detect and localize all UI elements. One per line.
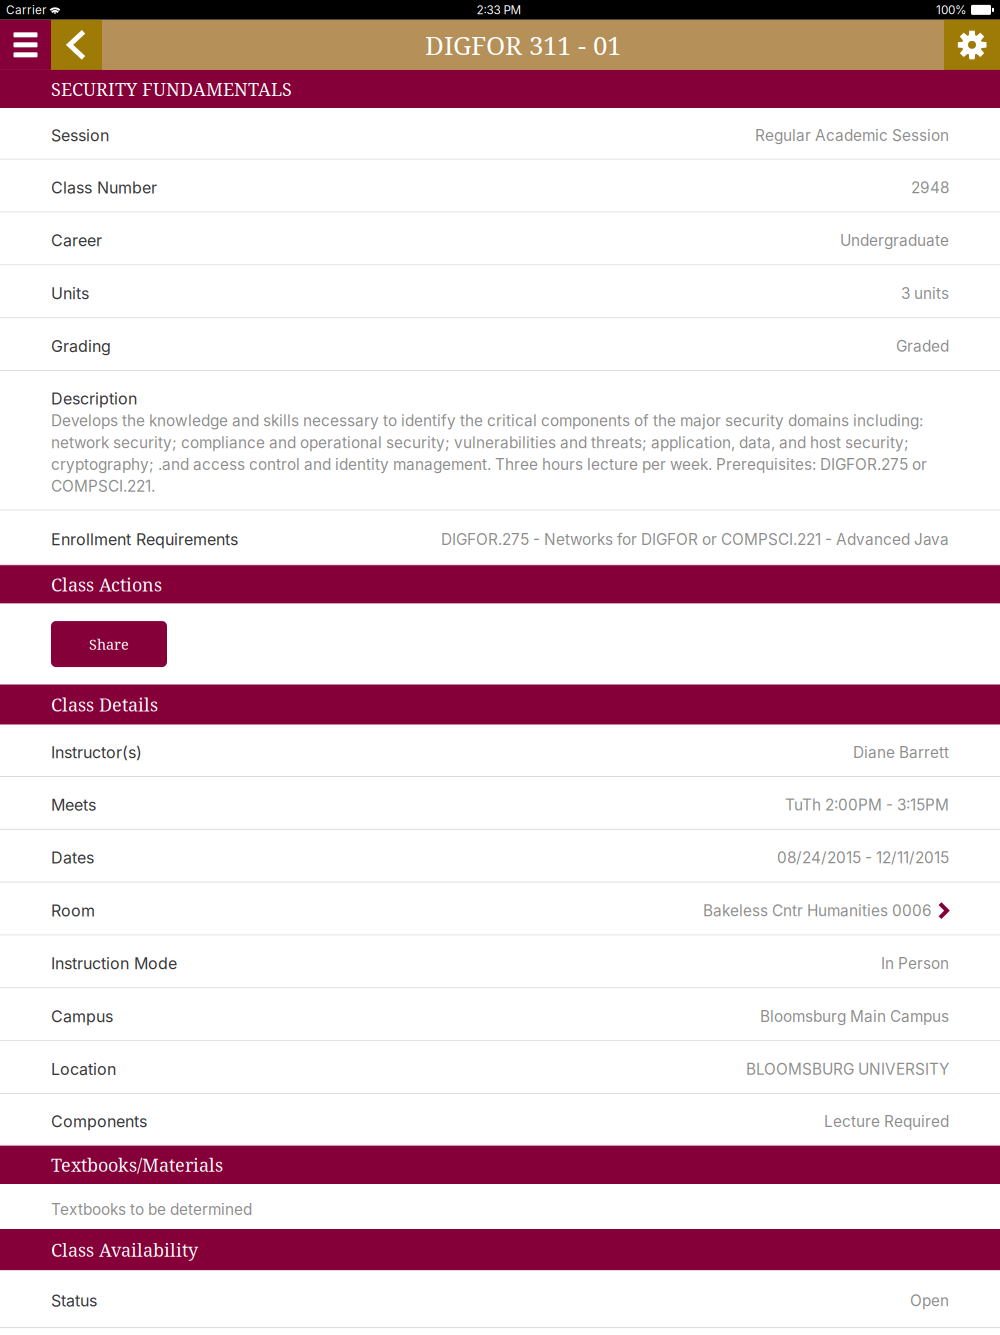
staticText: Meets (51, 795, 96, 815)
staticText: Room (51, 901, 95, 920)
button[interactable]: Share (51, 621, 167, 667)
button[interactable]: Back (51, 20, 102, 70)
staticText: Textbooks/Materials (51, 1153, 223, 1177)
staticText: Open (910, 1291, 949, 1310)
button[interactable]: Settings (944, 20, 1000, 70)
staticText: Class Availability (51, 1237, 198, 1262)
staticText: 3 units (901, 284, 949, 303)
staticText: Bakeless Cntr Humanities 0006 (703, 901, 932, 920)
staticText: Regular Academic Session (755, 126, 949, 145)
staticText: SECURITY FUNDAMENTALS (51, 77, 292, 101)
staticText: Undergraduate (840, 231, 949, 250)
staticText: Grading (51, 336, 111, 356)
staticText: Bloomsburg Main Campus (760, 1007, 949, 1026)
staticText: Class Actions (51, 572, 162, 597)
staticText: Status (51, 1291, 97, 1310)
staticText: Instructor(s) (51, 743, 142, 762)
staticText: DIGFOR.275 - Networks for DIGFOR or COMP… (441, 530, 949, 549)
staticText: Location (51, 1059, 116, 1079)
staticText: TuTh 2:00PM - 3:15PM (785, 796, 949, 814)
staticText: In Person (881, 954, 949, 973)
staticText: Carrier (6, 3, 46, 17)
staticText: Develops the knowledge and skills necess… (51, 411, 927, 496)
staticText: BLOOMSBURG UNIVERSITY (746, 1060, 949, 1078)
staticText: Enrollment Requirements (51, 530, 238, 549)
staticText: Class Number (51, 178, 157, 197)
staticText: Graded (896, 337, 949, 355)
button[interactable]: Menu (0, 20, 51, 70)
staticText: Textbooks to be determined (51, 1200, 252, 1219)
staticText: Share (89, 634, 129, 654)
staticText: 2:33 PM (476, 3, 521, 17)
staticText: 2948 (911, 178, 949, 197)
staticText: Session (51, 126, 109, 145)
staticText: 08/24/2015 - 12/11/2015 (777, 848, 949, 867)
staticText: Lecture Required (824, 1112, 949, 1131)
staticText: 100% (936, 3, 967, 17)
staticText: DIGFOR 311 - 01 (425, 27, 621, 62)
staticText: Description (51, 389, 137, 408)
staticText: Instruction Mode (51, 954, 177, 973)
staticText: Career (51, 231, 102, 250)
staticText: Class Details (51, 692, 158, 717)
staticText: Components (51, 1112, 147, 1131)
staticText: Diane Barrett (853, 743, 949, 762)
staticText: Dates (51, 848, 94, 867)
staticText: Units (51, 284, 89, 303)
staticText: Campus (51, 1007, 113, 1026)
